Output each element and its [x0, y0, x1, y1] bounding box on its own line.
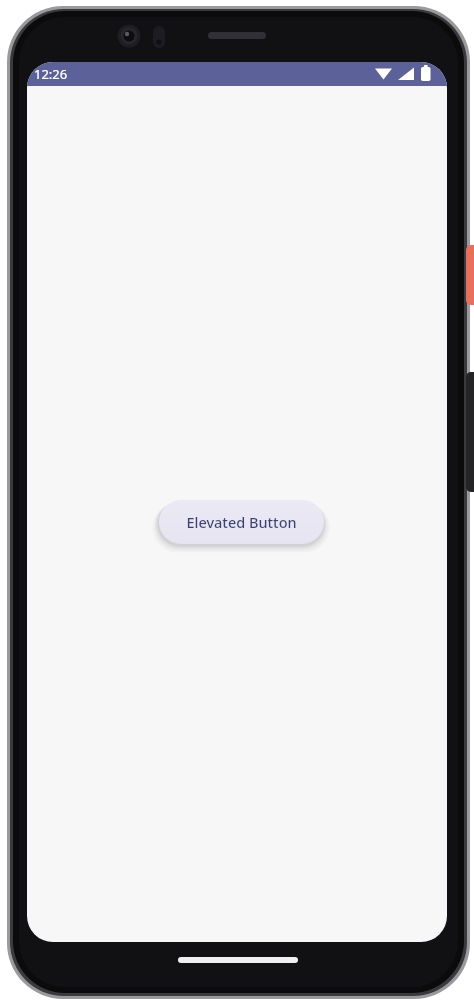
button[interactable]: Elevated Button: [159, 500, 324, 544]
staticText: Elevated Button: [186, 512, 297, 532]
staticText: 12:26: [34, 65, 68, 83]
